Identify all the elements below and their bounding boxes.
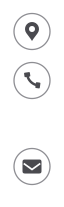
button[interactable]: Send email (13, 148, 50, 185)
button[interactable]: Call (13, 62, 50, 99)
button[interactable]: Get directions (13, 13, 50, 50)
